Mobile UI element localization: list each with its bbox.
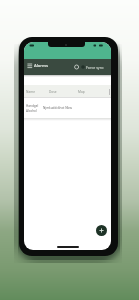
button[interactable]: Force sync [73, 62, 109, 72]
button[interactable]: Handgel [24, 99, 111, 118]
staticText: Dose [49, 90, 57, 94]
staticText: Map [78, 90, 85, 94]
staticText: Handgel [26, 104, 39, 108]
staticText: Force sync [86, 65, 104, 70]
staticText: Alarms [34, 63, 49, 69]
button[interactable] [96, 225, 107, 236]
staticText: Name [26, 90, 35, 94]
staticText: Alcohol [26, 109, 37, 113]
button[interactable] [27, 62, 33, 70]
staticText: Njmkuddckhot Nbw [43, 106, 72, 110]
